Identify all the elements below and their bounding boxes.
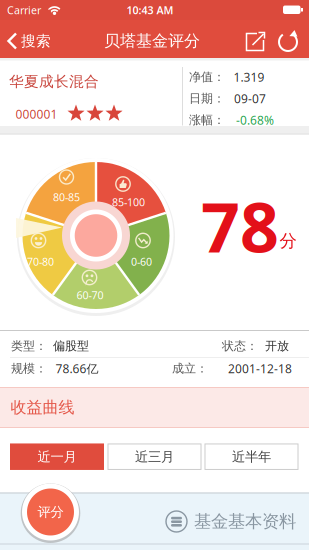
staticText: 华夏成长混合 <box>9 72 99 90</box>
button[interactable]: 分享 <box>242 20 270 58</box>
button[interactable]: 近半年 <box>204 443 298 470</box>
staticText: 80-85 <box>53 190 80 204</box>
staticText: 近三月 <box>135 448 174 465</box>
staticText: 85-100 <box>112 195 145 209</box>
staticText: 60-70 <box>76 288 103 302</box>
staticText: 近一月 <box>37 448 76 465</box>
staticText: Carrier <box>7 3 41 17</box>
staticText: 近半年 <box>232 448 271 465</box>
staticText: -0.68% <box>236 112 274 128</box>
button[interactable]: 返回搜索 <box>0 20 58 58</box>
staticText: 78.66亿 <box>55 360 98 376</box>
staticText: 000001 <box>15 106 57 122</box>
staticText: 类型： <box>11 339 47 353</box>
staticText: 分 <box>279 230 296 252</box>
button[interactable]: 近三月 <box>107 443 201 470</box>
staticText: 成立： <box>172 361 208 376</box>
staticText: 涨幅： <box>189 113 225 127</box>
button[interactable]: 评分 <box>20 482 80 542</box>
staticText: 搜索 <box>21 32 51 50</box>
staticText: 2001-12-18 <box>228 360 292 376</box>
staticText: 1.319 <box>233 69 264 85</box>
staticText: 开放 <box>265 339 289 353</box>
staticText: 0-60 <box>131 254 152 269</box>
staticText: 收益曲线 <box>10 398 74 417</box>
button[interactable]: 近一月 <box>10 443 104 470</box>
staticText: 评分 <box>37 504 63 520</box>
staticText: 贝塔基金评分 <box>104 31 200 51</box>
staticText: 日期： <box>189 91 225 106</box>
staticText: 净值： <box>189 70 225 84</box>
staticText: 基金基本资料 <box>194 511 296 532</box>
staticText: 78 <box>201 181 279 271</box>
staticText: 规模： <box>11 361 47 376</box>
button[interactable]: 基金基本资料 <box>157 501 307 541</box>
staticText: 状态： <box>222 339 258 353</box>
button[interactable]: 刷新 <box>274 20 302 58</box>
staticText: 70-80 <box>27 254 54 269</box>
staticText: 09-07 <box>234 90 266 106</box>
staticText: 偏股型 <box>53 339 89 353</box>
staticText: 10:43 AM <box>126 3 173 17</box>
